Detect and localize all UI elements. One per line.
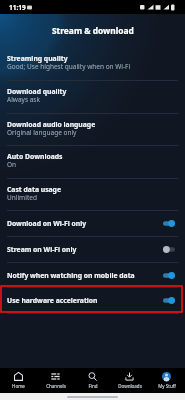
staticText: Original language only bbox=[7, 128, 77, 137]
button[interactable]: Download audio language bbox=[0, 114, 185, 145]
button[interactable]: Notify when watching on mobile data bbox=[0, 263, 185, 287]
button[interactable]: Cast data usage bbox=[0, 179, 185, 210]
button[interactable]: Find bbox=[74, 368, 111, 393]
staticText: Unlimited bbox=[7, 193, 37, 202]
button[interactable]: Home bbox=[0, 368, 37, 393]
staticText: Download audio language bbox=[7, 120, 96, 129]
staticText: Download quality bbox=[7, 87, 67, 96]
staticText: Notify when watching on mobile data bbox=[7, 271, 163, 280]
staticText: Auto Downloads bbox=[7, 152, 63, 161]
staticText: Streaming quality bbox=[7, 54, 68, 63]
staticText: Stream & download bbox=[52, 25, 134, 36]
staticText: On bbox=[7, 160, 17, 169]
staticText: Always ask bbox=[7, 95, 40, 104]
button[interactable]: Downloads bbox=[111, 368, 148, 393]
staticText: Good; Use highest quality when on Wi-Fi bbox=[7, 62, 131, 71]
button[interactable]: Download on Wi-Fi only bbox=[0, 211, 185, 236]
button[interactable]: My Stuff bbox=[148, 368, 185, 393]
staticText: Downloads bbox=[118, 383, 142, 389]
button[interactable]: Channels bbox=[37, 368, 74, 393]
staticText: Home bbox=[12, 383, 25, 389]
staticText: Channels bbox=[46, 383, 66, 389]
button[interactable]: Download quality bbox=[0, 81, 185, 113]
staticText: Stream on Wi-Fi only bbox=[7, 245, 163, 254]
staticText: Download on Wi-Fi only bbox=[7, 219, 163, 228]
button[interactable]: Use hardware acceleration bbox=[0, 288, 185, 313]
button[interactable]: Stream on Wi-Fi only bbox=[0, 237, 185, 262]
staticText: Cast data usage bbox=[7, 185, 61, 194]
staticText: 11:19 bbox=[9, 3, 26, 12]
staticText: Find bbox=[88, 383, 98, 389]
staticText: My Stuff bbox=[158, 383, 176, 389]
button[interactable]: Auto Downloads bbox=[0, 146, 185, 178]
staticText: Use hardware acceleration bbox=[7, 296, 163, 305]
button[interactable]: Streaming quality bbox=[0, 47, 185, 80]
